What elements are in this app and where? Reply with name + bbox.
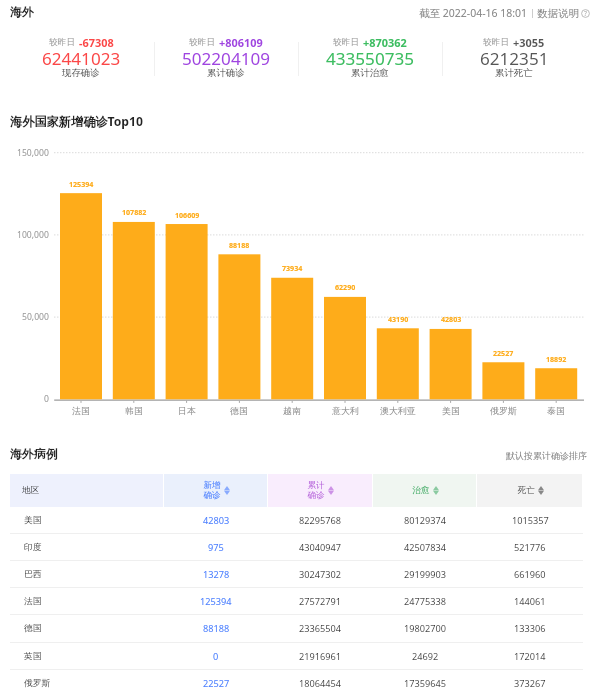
staticText: 19802700 [404,622,447,635]
staticText: 泰国 [547,405,565,416]
staticText: 150,000 [17,147,49,159]
staticText: -67308 [79,35,114,48]
staticText: ? [584,9,587,18]
staticText: 截至 2022-04-16 18:01 [419,6,528,20]
button[interactable]: 较昨日 [442,33,586,79]
staticText: 印度 [24,542,42,553]
button[interactable]: 死亡 [477,474,583,507]
staticText: 133306 [514,622,546,635]
staticText: 德国 [24,623,42,634]
staticText: +870362 [363,35,407,48]
staticText: 21916961 [299,650,342,663]
staticText: 越南 [283,405,301,416]
staticText: 意大利 [332,405,359,416]
staticText: 较昨日 [189,37,216,48]
staticText: 0 [213,650,219,663]
staticText: 17359645 [404,677,447,690]
staticText: 地区 [22,485,40,496]
staticText: 433550735 [326,47,414,65]
staticText: 30247302 [299,568,342,581]
button[interactable]: 印度 [10,534,583,561]
staticText: 0 [44,393,49,405]
staticText: 法国 [72,405,90,416]
staticText: 1015357 [512,514,549,527]
staticText: 43040947 [299,541,342,554]
button[interactable]: 美国 [10,507,583,534]
staticText: 俄罗斯 [24,678,51,689]
staticText: 27572791 [299,595,342,608]
staticText: 现存确诊 [62,67,100,79]
button[interactable]: 较昨日 [154,33,298,79]
staticText: 18064454 [299,677,342,690]
button[interactable]: 法国 [10,588,583,615]
button[interactable]: 俄罗斯 [10,670,583,690]
staticText: 42803 [203,514,230,527]
staticText: 24775338 [404,595,447,608]
button[interactable]: 英国 [10,643,583,670]
other: Data explanation [581,9,590,18]
staticText: 累计死亡 [495,67,533,79]
staticText: 较昨日 [49,37,76,48]
staticText: 澳大利亚 [380,405,416,416]
staticText: 新增 确诊 [203,480,221,501]
staticText: 韩国 [125,405,143,416]
button[interactable]: 德国 [10,615,583,642]
staticText: 88188 [203,622,230,635]
staticText: 88188 [229,240,250,250]
staticText: 较昨日 [333,37,360,48]
staticText: 50,000 [22,311,49,323]
staticText: 62290 [335,282,356,292]
staticText: 125394 [69,179,94,189]
staticText: 24692 [412,650,439,663]
staticText: 661960 [514,568,546,581]
button[interactable]: 默认按累计确诊排序 [506,450,587,461]
staticText: 521776 [514,541,546,554]
staticText: 数据说明 [537,7,579,20]
staticText: 巴西 [24,569,42,580]
staticText: 美国 [24,515,42,526]
staticText: 海外病例 [10,447,58,462]
staticText: 6212351 [480,47,549,65]
staticText: 累计确诊 [207,67,245,79]
button[interactable]: 截至 2022-04-16 18:01 [419,6,590,20]
button[interactable]: 较昨日 [298,33,442,79]
staticText: 18892 [546,354,567,364]
staticText: 73934 [282,263,303,273]
button[interactable]: 较昨日 [9,33,153,79]
staticText: 累计 确诊 [307,480,325,501]
staticText: 107882 [122,207,147,217]
staticText: 德国 [230,405,248,416]
staticText: 日本 [178,405,196,416]
staticText: 82295768 [299,514,342,527]
staticText: 累计治愈 [351,67,389,79]
staticText: 较昨日 [483,37,510,48]
button[interactable]: 治愈 [373,474,477,507]
staticText: 22527 [493,348,514,358]
staticText: 80129374 [404,514,447,527]
staticText: 125394 [200,595,232,608]
staticText: 975 [208,541,224,554]
staticText: 62441023 [42,47,121,65]
staticText: 英国 [24,651,42,662]
staticText: 502204109 [182,47,270,65]
staticText: 治愈 [412,485,430,496]
staticText: 默认按累计确诊排序 [506,450,587,461]
staticText: +3055 [513,35,545,48]
staticText: 373267 [514,677,546,690]
staticText: 23365504 [299,622,342,635]
staticText: 海外 [10,5,34,20]
button[interactable]: 新增 确诊 [164,474,268,507]
staticText: 29199903 [404,568,447,581]
button[interactable]: 巴西 [10,561,583,588]
staticText: 100,000 [17,229,49,241]
button[interactable]: 累计 确诊 [268,474,373,507]
staticText: 俄罗斯 [490,405,517,416]
staticText: 172014 [514,650,546,663]
staticText: 106609 [175,210,200,220]
staticText: 死亡 [517,485,535,496]
staticText: 43190 [388,314,409,324]
staticText: +806109 [219,35,263,48]
staticText: 42803 [441,314,462,324]
staticText: 美国 [442,405,460,416]
staticText: 13278 [203,568,230,581]
